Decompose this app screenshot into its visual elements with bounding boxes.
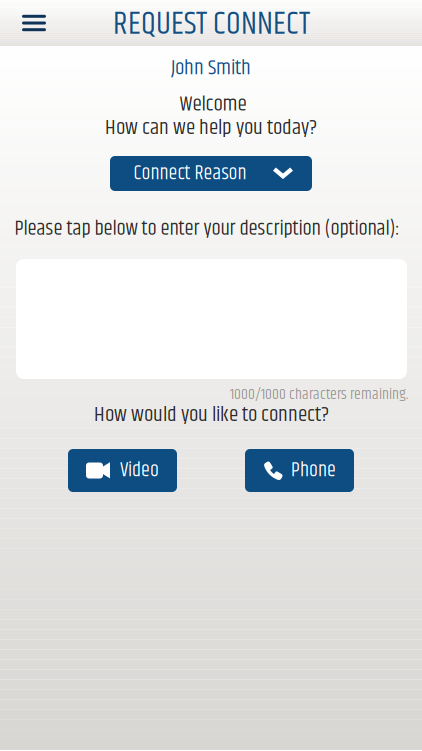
- staticText: Video: [120, 455, 159, 486]
- staticText: How would you like to connect?: [94, 399, 329, 431]
- staticText: Phone: [291, 455, 336, 486]
- staticText: Please tap below to enter your descripti…: [14, 213, 399, 245]
- button[interactable]: Video: [68, 449, 177, 492]
- staticText: Welcome: [179, 88, 246, 121]
- staticText: Connect Reason: [133, 158, 246, 189]
- button[interactable]: Open menu: [0, 0, 56, 46]
- button[interactable]: Connect Reason: [110, 156, 312, 191]
- staticText: 1000/1000 characters remaining.: [230, 383, 408, 406]
- button[interactable]: Phone: [245, 449, 354, 492]
- staticText: REQUEST CONNECT: [113, 0, 310, 49]
- staticText: John Smith: [171, 52, 251, 84]
- staticText: How can we help you today?: [105, 112, 317, 144]
